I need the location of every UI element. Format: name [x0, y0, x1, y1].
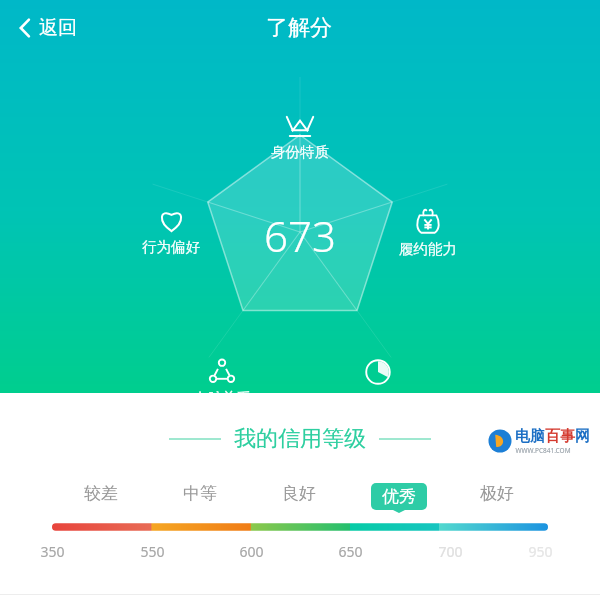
staticText: 650: [338, 542, 363, 561]
staticText: 了解分: [266, 14, 332, 42]
staticText: 身份特质: [271, 143, 329, 161]
button[interactable]: 极好: [467, 483, 527, 504]
staticText: 电脑: [515, 427, 545, 446]
button[interactable]: 中等: [170, 483, 230, 504]
staticText: 百事: [545, 427, 575, 446]
other: 人脉关系: [208, 358, 236, 384]
staticText: 我的信用等级: [234, 425, 366, 453]
button[interactable]: 履约能力: [381, 205, 475, 260]
button[interactable]: 人脉关系: [175, 356, 269, 409]
other: 行为偏好: [157, 207, 186, 233]
staticText: 履约能力: [399, 240, 457, 258]
staticText: 人脉关系: [193, 389, 251, 407]
staticText: 较差: [84, 483, 118, 504]
staticText: 信用历史: [349, 391, 407, 409]
staticText: 网: [575, 427, 590, 446]
button[interactable]: 较差: [71, 483, 131, 504]
staticText: 行为偏好: [142, 238, 200, 256]
staticText: WWW.PC841.COM: [515, 446, 571, 455]
other: 身份特质: [285, 114, 315, 138]
button[interactable]: 信用历史: [331, 356, 425, 411]
staticText: 550: [140, 542, 165, 561]
staticText: 350: [40, 542, 65, 561]
staticText: 673: [264, 207, 336, 264]
button[interactable]: 良好: [269, 483, 329, 504]
button[interactable]: 行为偏好: [124, 205, 218, 258]
staticText: 600: [239, 542, 264, 561]
button[interactable]: 返回: [0, 10, 89, 46]
staticText: 返回: [39, 16, 77, 40]
staticText: 中等: [183, 483, 217, 504]
button[interactable]: 身份特质: [253, 112, 347, 163]
staticText: 950: [528, 542, 553, 561]
staticText: 优秀: [382, 486, 416, 507]
other: 信用历史: [364, 358, 392, 386]
staticText: 700: [438, 542, 463, 561]
staticText: 极好: [480, 483, 514, 504]
staticText: 良好: [282, 483, 316, 504]
other: 履约能力: [414, 207, 442, 235]
button[interactable]: 优秀: [369, 483, 429, 513]
